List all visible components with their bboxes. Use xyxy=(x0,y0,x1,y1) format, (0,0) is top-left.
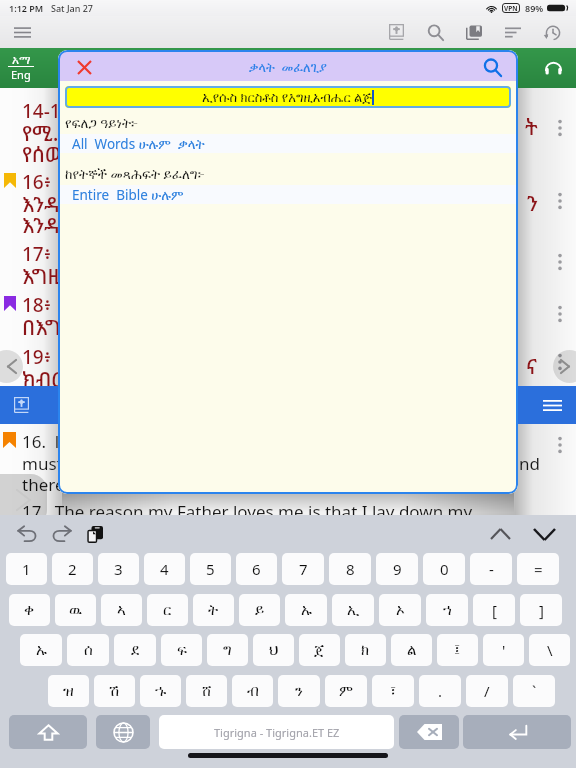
button[interactable]: ር xyxy=(147,594,188,626)
button[interactable]: ' xyxy=(483,634,524,666)
staticText: ና xyxy=(526,352,538,381)
button[interactable]: 3 xyxy=(98,553,139,585)
button[interactable] xyxy=(0,386,576,424)
staticText: ፍ xyxy=(177,643,187,658)
staticText: [ xyxy=(492,600,497,620)
button[interactable]: ም xyxy=(325,675,367,707)
button[interactable]: / xyxy=(466,675,508,707)
button[interactable]: 4 xyxy=(144,553,185,585)
button[interactable]: History xyxy=(539,19,565,45)
button[interactable]: ደ xyxy=(114,634,156,666)
button[interactable]: ይ xyxy=(239,594,280,626)
button[interactable]: ኢየሱስ ክርስቶስ የእግዚአብሔር ልጅ xyxy=(65,86,511,108)
button[interactable]: Notes xyxy=(500,19,526,45)
button[interactable]: 8 xyxy=(329,553,371,585)
button[interactable]: ] xyxy=(520,594,562,626)
button[interactable]: ኡ xyxy=(20,634,62,666)
button[interactable]: More options xyxy=(552,352,568,372)
staticText: ኦ xyxy=(396,603,405,618)
button[interactable]: Menu xyxy=(8,18,36,46)
button[interactable]: Previous field xyxy=(484,518,516,550)
button[interactable]: Redo xyxy=(46,519,76,549)
staticText: ኁ xyxy=(155,684,167,699)
button[interactable]: Next field xyxy=(528,518,560,550)
button[interactable]: ክ xyxy=(345,634,386,666)
button[interactable]: More options xyxy=(552,118,568,138)
button[interactable]: Backspace xyxy=(399,715,459,749)
button[interactable]: = xyxy=(517,553,559,585)
button[interactable]: ቀ xyxy=(9,594,50,626)
button[interactable]: Next page xyxy=(0,474,47,526)
button[interactable]: ዝ xyxy=(48,675,89,707)
button[interactable]: Enter xyxy=(463,715,571,749)
button[interactable]: Previous chapter xyxy=(0,350,23,383)
button[interactable]: More options xyxy=(552,304,568,324)
button[interactable]: Tigrigna - Tigrigna.ET EZ xyxy=(159,715,394,749)
button[interactable]: 7 xyxy=(282,553,324,585)
staticText: nd xyxy=(519,452,540,475)
button[interactable]: ኦ xyxy=(379,594,421,626)
button[interactable]: 2 xyxy=(52,553,93,585)
button[interactable]: ን xyxy=(278,675,320,707)
staticText: Entire Bible ሁሉም xyxy=(72,186,184,204)
button[interactable]: ኢ xyxy=(332,594,374,626)
button[interactable]: ህ xyxy=(253,634,294,666)
button[interactable]: . xyxy=(419,675,461,707)
button[interactable]: Undo xyxy=(12,519,42,549)
button[interactable]: More options xyxy=(552,191,568,211)
button[interactable]: - xyxy=(470,553,512,585)
button[interactable]: Audio xyxy=(540,55,566,81)
staticText: ] xyxy=(539,600,544,620)
button[interactable]: Close xyxy=(72,55,96,79)
staticText: የፍለጋ ዓይነት፦ xyxy=(65,114,139,132)
staticText: እንዳ xyxy=(22,211,60,233)
button[interactable]: Next chapter xyxy=(553,350,576,383)
button[interactable]: ግ xyxy=(207,634,248,666)
button[interactable]: Bible xyxy=(383,19,409,45)
staticText: 17. The reason my Father loves me is tha… xyxy=(22,500,473,523)
staticText: ህ xyxy=(269,643,279,658)
button[interactable]: ፍ xyxy=(161,634,202,666)
button[interactable]: ሸ xyxy=(186,675,227,707)
staticText: ` xyxy=(532,681,537,701)
button[interactable]: Entire Bible ሁሉም xyxy=(60,185,516,204)
button[interactable]: ኣ xyxy=(101,594,142,626)
button[interactable]: 5 xyxy=(190,553,231,585)
button[interactable]: [ xyxy=(473,594,515,626)
button[interactable]: አማ xyxy=(8,54,34,82)
button[interactable]: Library xyxy=(461,19,487,45)
button[interactable]: More options xyxy=(552,252,568,272)
button[interactable]: ኡ xyxy=(285,594,327,626)
button[interactable]: ት xyxy=(193,594,234,626)
button[interactable]: ል xyxy=(391,634,432,666)
button[interactable]: More options xyxy=(552,435,568,455)
staticText: ኣ xyxy=(117,603,126,618)
button[interactable]: ፣ xyxy=(372,675,414,707)
button[interactable]: 0 xyxy=(423,553,465,585)
button[interactable]: ኀ xyxy=(426,594,468,626)
staticText: 0 xyxy=(440,559,449,579)
button[interactable]: ሽ xyxy=(94,675,135,707)
staticText: አማ xyxy=(12,54,31,66)
staticText: እንዳ xyxy=(22,190,60,212)
button[interactable]: Change language xyxy=(96,715,150,749)
button[interactable]: Paste xyxy=(80,519,110,549)
button[interactable]: ብ xyxy=(232,675,273,707)
button[interactable]: 9 xyxy=(376,553,418,585)
staticText: ክብር xyxy=(22,365,63,387)
button[interactable]: ፤ xyxy=(437,634,478,666)
button[interactable]: 1 xyxy=(6,553,47,585)
button[interactable]: Search xyxy=(422,19,448,45)
button[interactable]: All Words ሁሉም ቃላት xyxy=(60,134,516,153)
button[interactable]: ዉ xyxy=(55,594,96,626)
button[interactable]: \ xyxy=(529,634,570,666)
staticText: ግ xyxy=(223,643,232,658)
button[interactable]: ኁ xyxy=(140,675,181,707)
button[interactable]: ` xyxy=(513,675,555,707)
button[interactable]: Search xyxy=(480,55,504,79)
button[interactable]: Shift xyxy=(9,715,87,749)
button[interactable]: ሰ xyxy=(67,634,109,666)
button[interactable]: 6 xyxy=(236,553,277,585)
button[interactable]: ጀ xyxy=(299,634,340,666)
button[interactable]: ሀ xyxy=(496,55,522,81)
